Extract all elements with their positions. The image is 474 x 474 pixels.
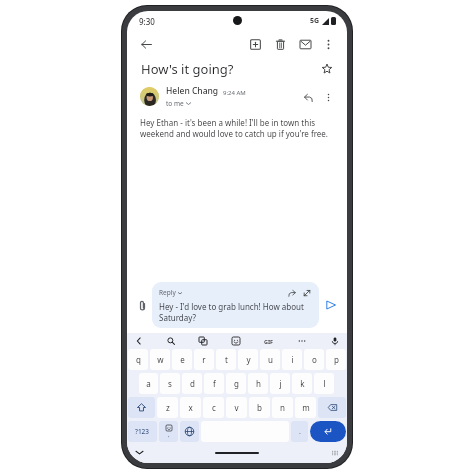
button[interactable]: Send xyxy=(322,296,340,314)
staticText: 9:24 AM xyxy=(223,89,246,97)
button[interactable]: Voice input xyxy=(328,334,342,348)
button[interactable]: Forward xyxy=(286,287,297,298)
staticText: How's it going? xyxy=(141,60,234,78)
button[interactable]: x xyxy=(180,397,201,418)
button[interactable]: More options xyxy=(319,88,337,106)
staticText: y xyxy=(246,354,251,365)
button[interactable]: t xyxy=(216,349,236,370)
button[interactable]: Reply xyxy=(152,282,319,328)
staticText: b xyxy=(257,402,262,413)
button[interactable]: n xyxy=(272,397,293,418)
button[interactable]: m xyxy=(295,397,316,418)
staticText: 9:30 xyxy=(139,16,155,27)
staticText: f xyxy=(213,378,216,389)
staticText: 5G xyxy=(310,16,320,26)
button[interactable]: h xyxy=(248,373,268,394)
button[interactable]: Backspace xyxy=(318,397,346,418)
button[interactable]: More xyxy=(295,334,309,348)
staticText: GIF xyxy=(264,338,274,345)
button[interactable]: d xyxy=(182,373,202,394)
button[interactable]: k xyxy=(292,373,312,394)
staticText: n xyxy=(280,402,285,413)
button[interactable]: Back xyxy=(136,34,156,54)
staticText: Hey - I'd love to grab lunch! How about … xyxy=(159,301,312,323)
staticText: Hey Ethan - it's been a while! I'll be i… xyxy=(140,117,334,140)
staticText: m xyxy=(302,402,310,413)
button[interactable]: Emoji xyxy=(229,334,243,348)
button[interactable]: c xyxy=(203,397,224,418)
staticText: . xyxy=(299,427,301,437)
staticText: j xyxy=(279,378,282,389)
button[interactable]: y xyxy=(238,349,258,370)
button[interactable]: Change language xyxy=(180,421,199,442)
staticText: i xyxy=(291,354,294,365)
staticText: w xyxy=(157,354,164,365)
button[interactable]: ?123 xyxy=(128,421,157,442)
button[interactable]: f xyxy=(204,373,224,394)
staticText: v xyxy=(234,402,239,413)
staticText: h xyxy=(256,378,261,389)
button[interactable]: p xyxy=(326,349,346,370)
staticText: z xyxy=(166,402,170,413)
button[interactable]: Keyboard settings xyxy=(329,447,340,458)
staticText: , xyxy=(168,431,170,439)
button[interactable]: r xyxy=(194,349,214,370)
staticText: g xyxy=(234,378,239,389)
staticText: c xyxy=(212,402,216,413)
button[interactable]: Back xyxy=(132,334,146,348)
staticText: Reply xyxy=(159,288,176,297)
button[interactable]: s xyxy=(160,373,180,394)
button[interactable]: Translate xyxy=(196,334,210,348)
button[interactable]: e xyxy=(172,349,192,370)
button[interactable]: q xyxy=(128,349,148,370)
staticText: u xyxy=(268,354,273,365)
button[interactable]: o xyxy=(304,349,324,370)
button[interactable]: g xyxy=(226,373,246,394)
button[interactable]: Delete xyxy=(270,34,290,54)
button[interactable]: u xyxy=(260,349,280,370)
staticText: l xyxy=(323,378,326,389)
button[interactable]: w xyxy=(150,349,170,370)
staticText: Helen Chang xyxy=(166,85,219,97)
button[interactable]: Hide keyboard xyxy=(134,447,145,458)
button[interactable]: Attach file xyxy=(134,297,150,313)
button[interactable]: Expand xyxy=(301,287,312,298)
button[interactable]: l xyxy=(314,373,334,394)
staticText: d xyxy=(190,378,195,389)
button[interactable]: b xyxy=(249,397,270,418)
button[interactable]: j xyxy=(270,373,290,394)
staticText: x xyxy=(188,402,193,413)
staticText: t xyxy=(225,354,228,365)
staticText: e xyxy=(180,354,185,365)
button[interactable]: a xyxy=(139,373,158,394)
button[interactable]: Archive xyxy=(245,34,265,54)
staticText: p xyxy=(334,354,339,365)
staticText: q xyxy=(136,354,141,365)
staticText: s xyxy=(168,378,172,389)
button[interactable]: z xyxy=(157,397,178,418)
staticText: to me xyxy=(166,99,184,108)
button[interactable]: Search xyxy=(164,334,178,348)
button[interactable]: Enter xyxy=(310,421,346,442)
button[interactable]: Shift xyxy=(128,397,155,418)
button[interactable]: Reply xyxy=(299,88,317,106)
staticText: ?123 xyxy=(135,427,150,436)
button[interactable]: v xyxy=(226,397,247,418)
button[interactable]: Mark unread xyxy=(295,34,315,54)
button[interactable]: i xyxy=(282,349,302,370)
staticText: a xyxy=(146,378,151,389)
button[interactable]: More options xyxy=(318,34,338,54)
staticText: o xyxy=(312,354,317,365)
button[interactable]: . xyxy=(291,421,308,442)
button[interactable]: Star xyxy=(318,60,336,78)
staticText: k xyxy=(300,378,305,389)
button[interactable]: Emoji and comma xyxy=(159,421,178,442)
button[interactable]: GIF xyxy=(262,334,276,348)
staticText: r xyxy=(202,354,206,365)
